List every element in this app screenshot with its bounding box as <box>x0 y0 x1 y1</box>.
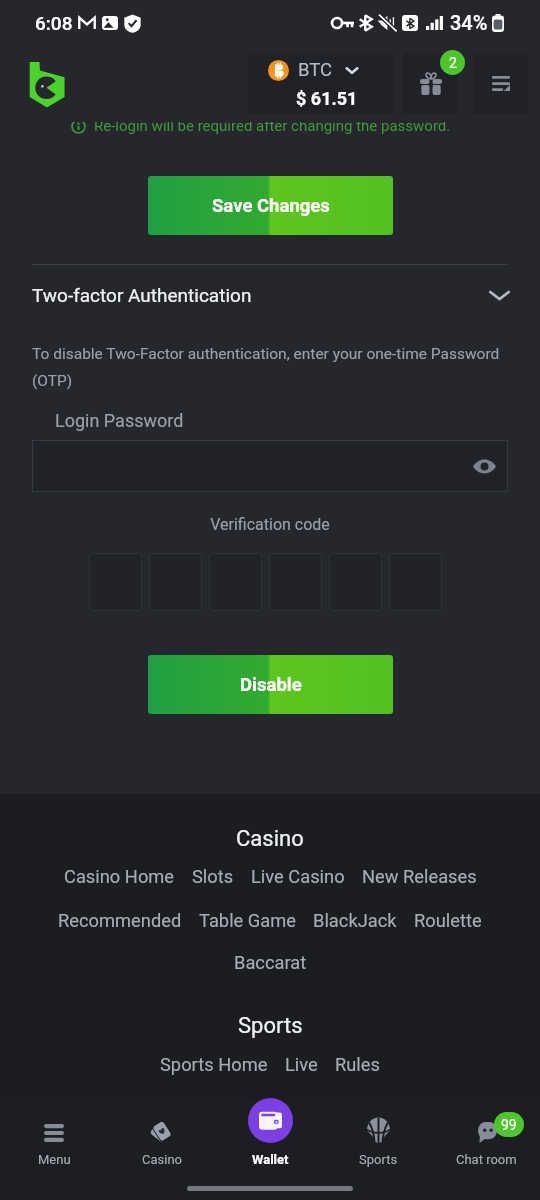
button[interactable]: Live Casino <box>251 866 345 887</box>
staticText: Save Changes <box>212 195 330 217</box>
button[interactable] <box>149 553 202 611</box>
button[interactable] <box>329 553 382 611</box>
staticText: 99 <box>501 1117 517 1133</box>
button[interactable]: New Releases <box>362 866 477 887</box>
button[interactable]: Rules <box>335 1054 380 1075</box>
staticText: $ 61.51 <box>296 88 358 109</box>
button[interactable]: Sports Home <box>160 1054 268 1075</box>
button[interactable]: Casino <box>108 1100 216 1167</box>
button[interactable] <box>89 553 142 611</box>
staticText: Re-login will be required after changing… <box>94 117 451 135</box>
staticText: Chat room <box>456 1152 517 1167</box>
button[interactable]: Show password <box>32 440 508 492</box>
button[interactable]: Slots <box>192 866 234 887</box>
staticText: 6:08 <box>35 12 73 34</box>
button[interactable]: BlackJack <box>313 910 397 931</box>
button[interactable]: Live <box>285 1054 318 1075</box>
button[interactable]: 99 <box>432 1100 540 1167</box>
staticText: 2 <box>449 55 457 71</box>
button[interactable] <box>209 553 262 611</box>
button[interactable]: Home <box>26 60 67 108</box>
staticText: Login Password <box>55 410 184 431</box>
staticText: Casino <box>236 826 304 852</box>
button[interactable]: Baccarat <box>234 952 307 973</box>
staticText: Casino <box>142 1152 182 1167</box>
button[interactable]: Sports <box>324 1100 432 1167</box>
staticText: Sports <box>238 1013 303 1039</box>
staticText: 34% <box>450 11 488 34</box>
button[interactable]: Disable <box>148 655 393 714</box>
button[interactable]: Gifts <box>403 53 458 114</box>
button[interactable] <box>389 553 442 611</box>
button[interactable]: Roulette <box>414 910 482 931</box>
staticText: Disable <box>240 674 302 696</box>
staticText: Two-factor Authentication <box>32 284 252 306</box>
button[interactable]: Save Changes <box>148 176 393 235</box>
button[interactable]: Show password <box>464 446 504 486</box>
button[interactable]: Recommended <box>58 910 182 931</box>
button[interactable]: Table Game <box>199 910 296 931</box>
staticText: Menu <box>38 1152 71 1167</box>
staticText: BTC <box>298 59 333 81</box>
button[interactable]: BTC <box>248 53 394 114</box>
staticText: Sports <box>359 1152 398 1167</box>
staticText: Verification code <box>0 515 540 534</box>
button[interactable]: Menu <box>473 53 528 114</box>
button[interactable]: Wallet <box>216 1100 324 1167</box>
button[interactable]: Menu <box>0 1100 108 1167</box>
staticText: To disable Two-Factor authentication, en… <box>32 345 512 390</box>
button[interactable] <box>269 553 322 611</box>
staticText: Wallet <box>252 1152 289 1167</box>
button[interactable]: Casino Home <box>64 866 175 887</box>
button[interactable]: Two-factor Authentication <box>0 265 540 325</box>
